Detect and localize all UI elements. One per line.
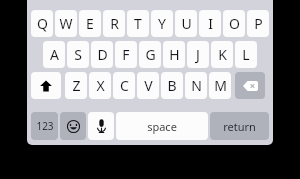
button[interactable]: C [113,72,135,99]
staticText: R [110,14,119,33]
button[interactable]: Backspace [235,72,265,99]
staticText: L [242,45,250,64]
staticText: P [254,14,263,33]
staticText: W [59,14,73,33]
button[interactable]: X [89,72,111,99]
staticText: V [144,76,153,95]
button[interactable]: A [43,41,65,68]
staticText: Y [158,14,166,33]
staticText: J [196,45,200,64]
button[interactable]: V [137,72,159,99]
staticText: Q [37,14,48,33]
staticText: G [145,45,156,64]
button[interactable]: P [247,10,269,37]
button[interactable]: L [235,41,257,68]
staticText: E [86,14,94,33]
button[interactable]: space [116,112,208,140]
button[interactable]: H [163,41,185,68]
button[interactable]: Y [151,10,173,37]
staticText: C [120,76,129,95]
staticText: T [134,14,142,33]
button[interactable]: Emoji [60,112,86,140]
button[interactable]: G [139,41,161,68]
staticText: B [167,76,177,95]
staticText: space [147,119,177,134]
button[interactable]: return [210,112,269,140]
button[interactable]: M [209,72,231,99]
staticText: H [169,45,180,64]
button[interactable]: Z [65,72,87,99]
staticText: M [214,76,227,95]
button[interactable]: W [55,10,77,37]
staticText: N [191,76,202,95]
button[interactable]: D [91,41,113,68]
button[interactable]: R [103,10,125,37]
staticText: D [97,45,108,64]
button[interactable]: 123 [31,112,58,140]
staticText: return [223,119,256,134]
button[interactable]: Dictate [88,112,114,140]
button[interactable]: F [115,41,137,68]
staticText: A [50,45,59,64]
staticText: X [96,76,105,95]
button[interactable]: K [211,41,233,68]
staticText: S [74,45,82,64]
staticText: K [218,45,227,64]
button[interactable]: U [175,10,197,37]
button[interactable]: J [187,41,209,68]
button[interactable]: Q [31,10,53,37]
staticText: U [181,14,192,33]
button[interactable]: E [79,10,101,37]
button[interactable]: T [127,10,149,37]
button[interactable]: B [161,72,183,99]
staticText: 123 [36,119,54,133]
button[interactable]: I [199,10,221,37]
button[interactable]: Shift [31,72,61,99]
button[interactable]: S [67,41,89,68]
staticText: Z [72,76,81,95]
staticText: F [122,45,130,64]
button[interactable]: O [223,10,245,37]
staticText: O [229,14,240,33]
staticText: I [208,14,213,33]
button[interactable]: N [185,72,207,99]
